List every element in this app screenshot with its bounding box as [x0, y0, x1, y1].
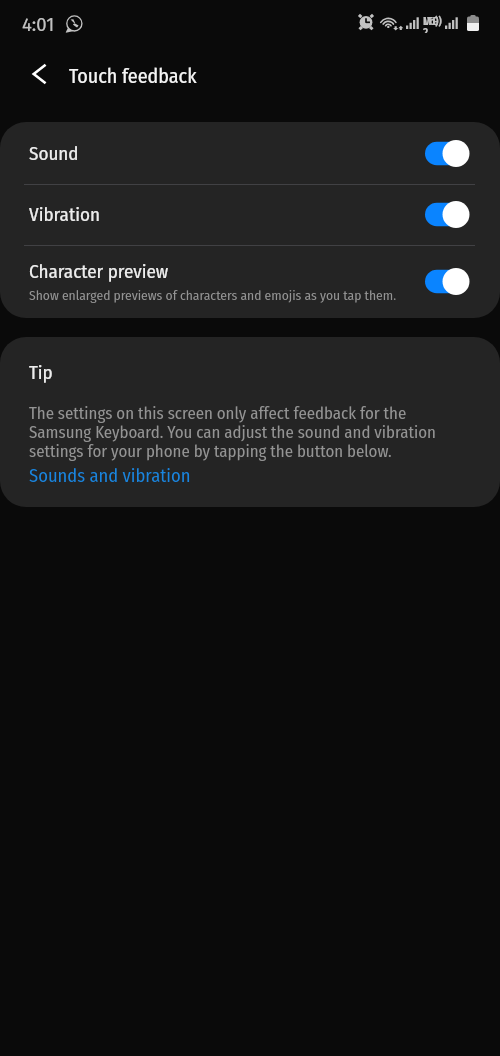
staticText: 4:01: [22, 14, 55, 36]
button[interactable]: On: [425, 201, 468, 228]
staticText: The settings on this screen only affect …: [29, 404, 447, 461]
staticText: Sounds and vibration: [29, 465, 191, 487]
button[interactable]: Sound: [0, 122, 500, 184]
button[interactable]: Navigate up: [24, 59, 54, 89]
staticText: Vibration: [29, 203, 100, 226]
staticText: Tip: [29, 361, 53, 384]
button[interactable]: Vibration: [0, 184, 500, 245]
button[interactable]: Character preview: [0, 245, 500, 318]
staticText: Show enlarged previews of characters and…: [29, 287, 396, 303]
button[interactable]: On: [425, 268, 468, 295]
button[interactable]: On: [425, 140, 468, 167]
staticText: Touch feedback: [69, 64, 197, 88]
staticText: Vo)): [424, 16, 442, 28]
staticText: LTE2: [423, 16, 443, 33]
staticText: Sound: [29, 142, 79, 165]
button[interactable]: Sounds and vibration: [29, 465, 191, 487]
staticText: Character preview: [29, 260, 169, 283]
